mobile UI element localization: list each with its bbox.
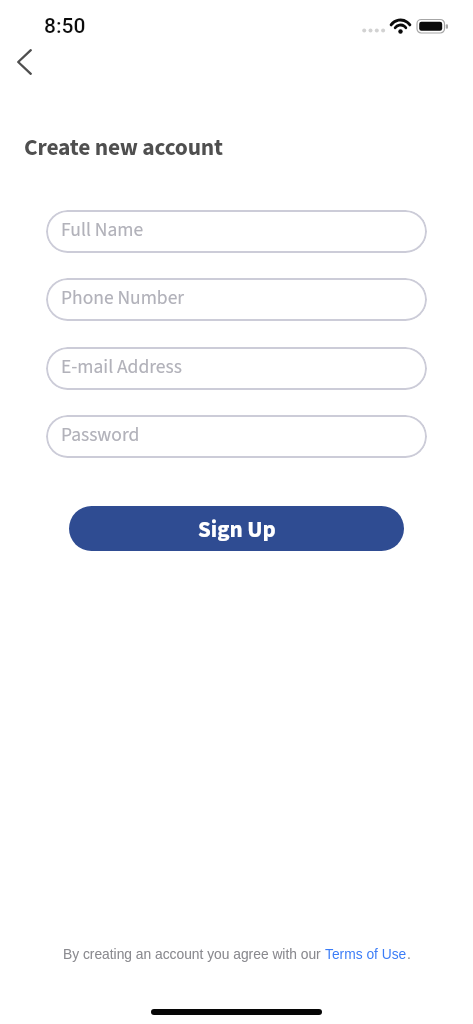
staticText: Sign Up [198,513,276,546]
button[interactable] [4,42,44,82]
button[interactable]: E-mail Address [46,347,427,390]
staticText: Password [61,421,140,449]
staticText: Full Name [61,216,144,244]
button[interactable]: Full Name [46,210,427,253]
staticText: 8:50 [44,14,86,39]
staticText: By creating an account you agree with ou… [63,947,325,962]
staticText: Phone Number [61,284,185,312]
staticText: Create new account [24,131,223,164]
staticText: . [407,947,411,962]
staticText: E-mail Address [61,353,182,381]
button[interactable]: Password [46,415,427,458]
button[interactable]: Sign Up [69,506,404,551]
button[interactable]: Terms of Use [325,947,407,962]
staticText: Terms of Use [325,947,407,962]
button[interactable]: Phone Number [46,278,427,321]
